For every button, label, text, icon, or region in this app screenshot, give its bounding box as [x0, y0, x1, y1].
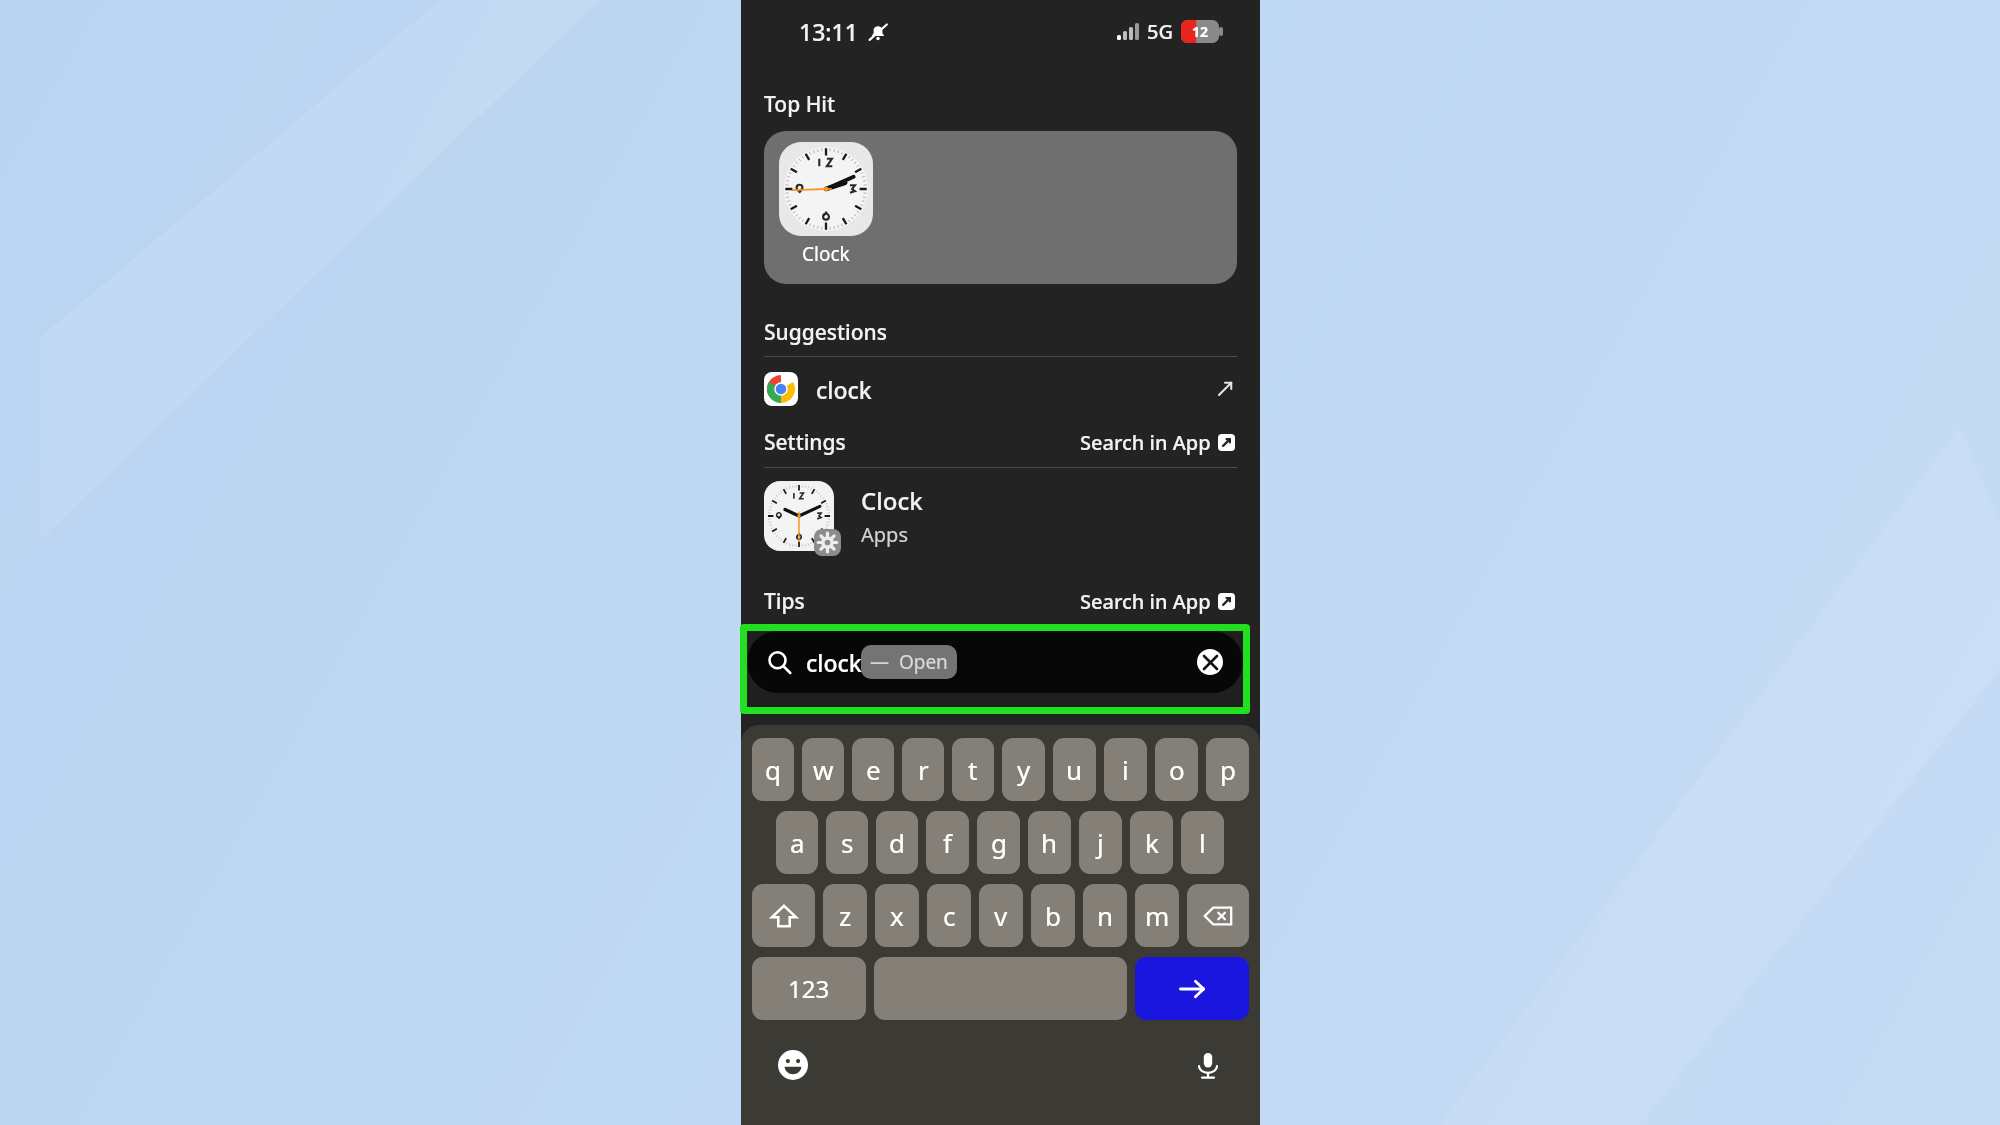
staticText: b	[1045, 898, 1061, 933]
staticText: g	[991, 825, 1007, 860]
staticText: j	[1097, 825, 1104, 860]
staticText: m	[1145, 898, 1170, 933]
staticText: Search in App	[1080, 429, 1211, 456]
button[interactable]: s	[826, 811, 868, 874]
button[interactable]: Search in App	[1078, 427, 1237, 458]
staticText: o	[1169, 752, 1185, 787]
staticText: r	[918, 752, 929, 787]
button[interactable]: c	[927, 884, 971, 947]
button[interactable]: Search	[1135, 957, 1249, 1020]
other: Insert suggestion	[1213, 377, 1237, 401]
button[interactable]: p	[1206, 738, 1249, 801]
staticText: a	[790, 825, 805, 860]
staticText: l	[1199, 825, 1206, 860]
staticText: Suggestions	[764, 318, 887, 347]
button[interactable]: h	[1028, 811, 1071, 874]
other: Search	[767, 650, 792, 675]
button[interactable]: e	[852, 738, 894, 801]
staticText: u	[1066, 752, 1083, 787]
staticText: p	[1220, 752, 1236, 787]
staticText: Top Hit	[764, 90, 836, 119]
button[interactable]: Search	[747, 631, 1243, 693]
button[interactable]: a	[776, 811, 818, 874]
button[interactable]: v	[979, 884, 1023, 947]
button[interactable]: k	[1130, 811, 1173, 874]
button[interactable]: Clock	[741, 468, 1260, 564]
staticText: w	[813, 752, 834, 787]
staticText: e	[866, 752, 881, 787]
button[interactable]: Search in App	[1078, 586, 1237, 617]
staticText: q	[765, 752, 781, 787]
staticText: Clock	[802, 241, 850, 267]
button[interactable]: n	[1083, 884, 1127, 947]
button[interactable]: f	[926, 811, 969, 874]
button[interactable]: Space	[874, 957, 1127, 1020]
button[interactable]: Shift	[752, 884, 815, 947]
staticText: Tips	[764, 587, 805, 616]
staticText: x	[890, 898, 904, 933]
staticText: 123	[788, 972, 830, 1005]
button[interactable]: clock	[741, 357, 1260, 421]
staticText: — Open	[870, 649, 948, 675]
button[interactable]: l	[1181, 811, 1224, 874]
button[interactable]: z	[823, 884, 867, 947]
staticText: n	[1097, 898, 1114, 933]
staticText: Apps	[861, 521, 908, 548]
staticText: i	[1122, 752, 1129, 787]
staticText: f	[943, 825, 952, 860]
staticText: h	[1041, 825, 1058, 860]
staticText: 13:11	[799, 16, 858, 47]
staticText: 5G	[1147, 18, 1173, 45]
button[interactable]: r	[902, 738, 944, 801]
button[interactable]: Voice input	[1187, 1044, 1229, 1086]
staticText: d	[889, 825, 905, 860]
button[interactable]: g	[977, 811, 1020, 874]
button[interactable]: u	[1053, 738, 1096, 801]
staticText: s	[841, 825, 854, 860]
button[interactable]: x	[875, 884, 919, 947]
staticText: v	[994, 898, 1008, 933]
button[interactable]: m	[1135, 884, 1179, 947]
button[interactable]: i	[1104, 738, 1147, 801]
button[interactable]: Emoji	[772, 1044, 814, 1086]
button[interactable]: 123	[752, 957, 866, 1020]
button[interactable]: q	[752, 738, 794, 801]
button[interactable]: y	[1002, 738, 1045, 801]
staticText: y	[1017, 752, 1031, 787]
staticText: k	[1145, 825, 1159, 860]
button[interactable]: j	[1079, 811, 1122, 874]
button[interactable]: t	[952, 738, 994, 801]
staticText: Clock	[861, 484, 923, 517]
staticText: c	[943, 898, 956, 933]
button[interactable]: w	[802, 738, 844, 801]
button[interactable]: Backspace	[1187, 884, 1249, 947]
button[interactable]: Clock	[764, 131, 1237, 284]
staticText: Settings	[764, 428, 846, 457]
staticText: clock	[816, 374, 872, 405]
staticText: z	[839, 898, 852, 933]
staticText: clock	[806, 647, 862, 678]
button[interactable]: o	[1155, 738, 1198, 801]
button[interactable]: b	[1031, 884, 1075, 947]
button[interactable]: Clear search	[1197, 649, 1223, 675]
button[interactable]: d	[876, 811, 918, 874]
staticText: Search in App	[1080, 588, 1211, 615]
staticText: 12	[1192, 22, 1209, 41]
staticText: t	[968, 752, 978, 787]
